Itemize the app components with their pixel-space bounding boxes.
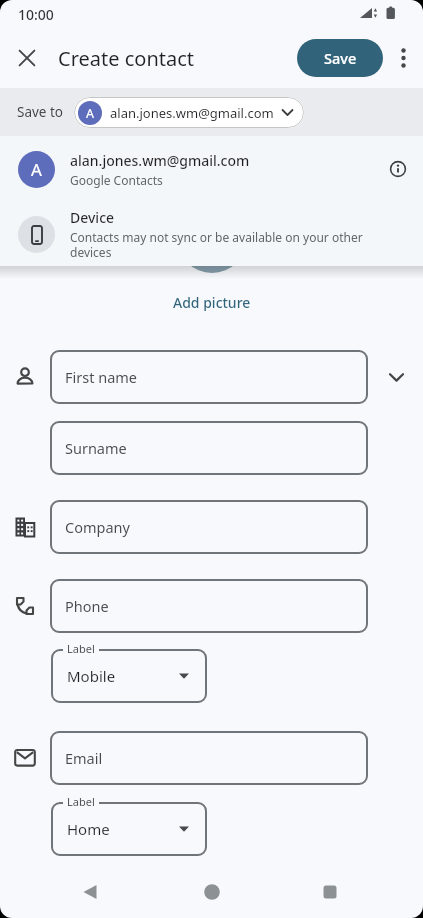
button[interactable]	[379, 360, 413, 394]
button[interactable]	[298, 870, 362, 914]
button[interactable]: Phone	[50, 579, 368, 633]
staticText: A	[31, 158, 42, 181]
staticText: alan.jones.wm@gmail.com	[70, 151, 250, 170]
staticText: Surname	[65, 438, 127, 458]
button[interactable]	[14, 45, 40, 71]
button[interactable]	[58, 870, 122, 914]
button[interactable]: First name	[50, 350, 368, 404]
button[interactable]: Company	[50, 500, 368, 554]
button[interactable]: Save	[297, 39, 383, 77]
button[interactable]	[383, 36, 423, 80]
staticText: Mobile	[67, 666, 116, 686]
staticText: First name	[65, 367, 138, 387]
button[interactable]	[180, 870, 244, 914]
staticText: Create contact	[58, 45, 195, 72]
staticText: Save	[324, 48, 357, 68]
button[interactable]: A	[0, 136, 423, 202]
staticText: Device	[70, 208, 115, 227]
staticText: Google Contacts	[70, 172, 163, 188]
staticText: 10:00	[18, 5, 54, 24]
staticText: Add picture	[173, 293, 251, 312]
staticText: Company	[65, 517, 130, 537]
button[interactable]: Mobile	[51, 649, 207, 703]
staticText: Phone	[65, 596, 109, 616]
button[interactable]: Email	[50, 731, 368, 785]
staticText: Home	[67, 819, 110, 839]
button[interactable]: A	[74, 97, 304, 128]
staticText: Contacts may not sync or be available on…	[70, 229, 363, 260]
staticText: Email	[65, 748, 103, 768]
button[interactable]: Home	[51, 802, 207, 856]
button[interactable]: Device	[0, 202, 423, 266]
staticText: Label	[67, 641, 95, 656]
staticText: Label	[67, 794, 95, 809]
staticText: A	[86, 105, 94, 122]
button[interactable]: Add picture	[173, 293, 251, 312]
button[interactable]: Surname	[50, 421, 368, 475]
staticText: alan.jones.wm@gmail.com	[110, 104, 274, 122]
staticText: Save to	[17, 103, 64, 121]
